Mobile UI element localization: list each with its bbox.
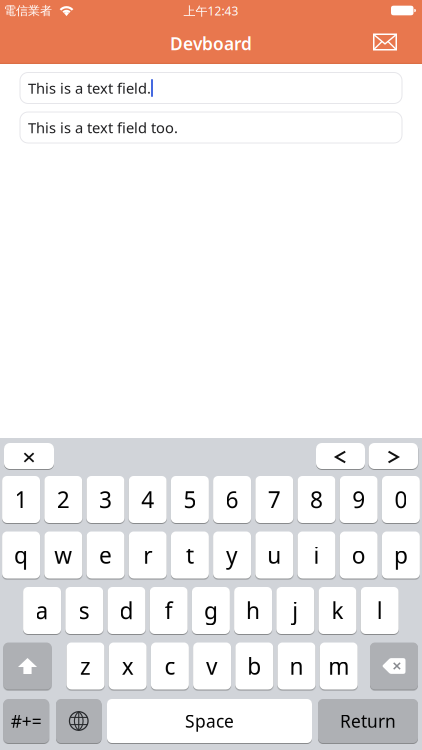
button[interactable]: Shift [3,642,51,689]
button[interactable]: Return [318,699,418,743]
button[interactable]: #+= [3,699,49,743]
staticText: This is a text field. [28,78,151,98]
button[interactable]: b [235,642,273,689]
button[interactable]: 2 [44,476,82,523]
staticText: 3 [99,484,112,514]
staticText: l [377,595,383,625]
button[interactable]: 5 [171,476,209,523]
button[interactable]: p [382,531,420,578]
button[interactable]: i [297,531,335,578]
button[interactable]: Delete [370,642,418,689]
button[interactable]: e [86,531,124,578]
button[interactable]: q [2,531,40,578]
button[interactable]: d [107,587,145,634]
staticText: p [394,540,408,570]
button[interactable]: 4 [129,476,167,523]
staticText: d [119,595,133,625]
button[interactable]: x [109,642,147,689]
button[interactable]: j [276,587,314,634]
staticText: s [79,595,90,625]
button[interactable]: This is a text field too. [20,112,402,143]
staticText: 7 [268,484,281,514]
staticText: m [328,651,349,681]
staticText: e [99,540,112,570]
staticText: 0 [394,484,407,514]
staticText: Return [340,709,396,732]
staticText: r [143,540,152,570]
staticText: h [246,595,260,625]
staticText: i [313,540,319,570]
staticText: #+= [11,709,42,732]
staticText: 4 [141,484,154,514]
staticText: f [165,595,173,625]
staticText: x [122,651,134,681]
button[interactable]: f [150,587,188,634]
button[interactable]: Mail [373,33,397,50]
button[interactable]: c [151,642,189,689]
staticText: 8 [310,484,323,514]
button[interactable]: g [192,587,230,634]
button[interactable]: r [129,531,167,578]
button[interactable]: y [213,531,251,578]
staticText: 上午12:43 [183,3,238,19]
staticText: b [247,651,261,681]
button[interactable]: h [234,587,272,634]
button[interactable]: z [66,642,104,689]
staticText: k [331,595,343,625]
button[interactable]: w [44,531,82,578]
button[interactable]: Next keyboard [56,699,101,743]
button[interactable]: v [193,642,231,689]
staticText: j [292,595,298,625]
button[interactable]: 1 [2,476,40,523]
button[interactable]: k [318,587,356,634]
button[interactable]: t [171,531,209,578]
button[interactable]: 8 [297,476,335,523]
button[interactable]: s [65,587,103,634]
button[interactable]: 6 [213,476,251,523]
staticText: y [226,540,238,570]
staticText: This is a text field too. [28,118,178,137]
staticText: 9 [352,484,365,514]
staticText: u [267,540,281,570]
button[interactable]: 3 [86,476,124,523]
staticText: a [36,595,49,625]
staticText: 電信業者 [4,3,52,18]
button[interactable]: This is a text field. [20,72,402,103]
staticText: z [80,651,91,681]
staticText: 5 [183,484,196,514]
button[interactable]: n [277,642,315,689]
button[interactable]: m [320,642,358,689]
button[interactable]: 9 [340,476,378,523]
button[interactable]: Next field [368,443,418,469]
button[interactable]: Dismiss keyboard [4,443,54,469]
staticText: 6 [226,484,239,514]
button[interactable]: l [361,587,399,634]
button[interactable]: u [255,531,293,578]
button[interactable]: Previous field [316,443,365,469]
staticText: 1 [15,484,28,514]
staticText: Devboard [170,32,252,55]
staticText: Space [185,709,234,732]
button[interactable]: 0 [382,476,420,523]
staticText: t [186,540,194,570]
button[interactable]: o [340,531,378,578]
staticText: g [204,595,218,625]
staticText: w [54,540,72,570]
staticText: o [352,540,366,570]
staticText: v [206,651,218,681]
staticText: c [164,651,175,681]
staticText: q [14,540,28,570]
button[interactable]: a [23,587,61,634]
staticText: 2 [57,484,70,514]
button[interactable]: Space [107,699,312,743]
staticText: n [289,651,303,681]
button[interactable]: 7 [255,476,293,523]
